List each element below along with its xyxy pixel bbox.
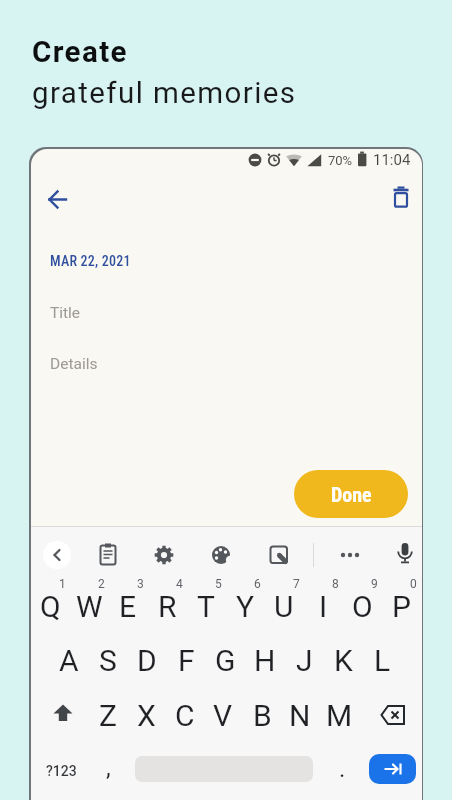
button[interactable]: Y	[215, 584, 275, 628]
staticText: P	[392, 589, 411, 624]
button[interactable]	[369, 754, 416, 784]
button[interactable]: P	[371, 584, 422, 628]
staticText: D	[137, 643, 157, 678]
staticText: Title	[50, 304, 81, 322]
staticText: Done	[331, 483, 372, 506]
button[interactable]	[207, 541, 235, 569]
button[interactable]: O	[332, 584, 392, 628]
button[interactable]: W	[59, 584, 119, 628]
staticText: O	[352, 589, 373, 624]
button[interactable]: Q	[31, 584, 80, 628]
button[interactable]: ,	[78, 746, 138, 790]
staticText: X	[137, 698, 156, 733]
button[interactable]: H	[235, 638, 295, 682]
button[interactable]	[49, 701, 77, 729]
staticText: 4	[176, 577, 183, 591]
staticText: 9	[371, 577, 378, 591]
button[interactable]: F	[156, 638, 216, 682]
staticText: I	[319, 589, 328, 624]
button[interactable]: B	[232, 693, 292, 737]
staticText: Z	[99, 698, 117, 733]
staticText: 7	[293, 577, 300, 591]
staticText: 2	[98, 577, 105, 591]
button[interactable]: S	[78, 638, 138, 682]
staticText: S	[99, 643, 117, 678]
staticText: J	[296, 643, 313, 678]
staticText: K	[334, 643, 353, 678]
button[interactable]: .	[312, 747, 372, 791]
button[interactable]: D	[117, 638, 177, 682]
button[interactable]: E	[98, 584, 158, 628]
staticText: 70%	[328, 153, 353, 168]
staticText: G	[215, 643, 236, 678]
button[interactable]	[387, 185, 415, 213]
staticText: B	[253, 698, 272, 733]
button[interactable]	[379, 702, 407, 730]
staticText: R	[158, 589, 177, 624]
button[interactable]: A	[39, 638, 99, 682]
button[interactable]: M	[309, 693, 369, 737]
staticText: A	[59, 643, 79, 678]
staticText: C	[175, 698, 195, 733]
staticText: .	[339, 755, 346, 783]
staticText: V	[213, 698, 233, 733]
button[interactable]: R	[137, 584, 197, 628]
staticText: 6	[254, 577, 261, 591]
staticText: U	[274, 589, 294, 624]
button[interactable]	[44, 186, 72, 214]
button[interactable]: V	[193, 693, 253, 737]
staticText: M	[326, 698, 353, 733]
button[interactable]: T	[176, 584, 236, 628]
staticText: H	[254, 643, 276, 678]
staticText: E	[119, 589, 137, 624]
button[interactable]	[265, 541, 293, 569]
button[interactable]: G	[195, 638, 255, 682]
staticText: T	[197, 589, 215, 624]
staticText: L	[374, 643, 391, 678]
button[interactable]: U	[254, 584, 314, 628]
button[interactable]	[336, 541, 364, 569]
staticText: F	[178, 643, 195, 678]
staticText: 1	[59, 577, 66, 591]
staticText: Q	[40, 589, 61, 624]
staticText: grateful memories	[32, 76, 297, 111]
button[interactable]	[391, 540, 419, 568]
button[interactable]: K	[313, 638, 373, 682]
staticText: Details	[50, 355, 98, 373]
staticText: N	[289, 698, 311, 733]
staticText: Create	[32, 35, 128, 70]
staticText: 8	[332, 577, 339, 591]
button[interactable]: Z	[78, 693, 138, 737]
staticText: 5	[215, 577, 222, 591]
button[interactable]	[94, 541, 122, 569]
button[interactable]	[43, 541, 71, 569]
staticText: 3	[137, 577, 144, 591]
staticText: W	[76, 589, 103, 624]
button[interactable]: J	[274, 638, 334, 682]
staticText: 0	[410, 577, 417, 591]
button[interactable]: C	[155, 693, 215, 737]
staticText: ?123	[46, 763, 77, 779]
button[interactable]: ?123	[31, 749, 91, 793]
button[interactable]: L	[352, 638, 412, 682]
staticText: MAR 22, 2021	[50, 253, 131, 269]
staticText: 11:04	[373, 151, 411, 169]
staticText: ,	[106, 754, 111, 782]
button[interactable]: N	[270, 693, 330, 737]
staticText: Y	[236, 589, 255, 624]
button[interactable]: X	[116, 693, 176, 737]
button[interactable]: Done	[294, 470, 408, 518]
button[interactable]: I	[293, 584, 353, 628]
button[interactable]	[150, 541, 178, 569]
